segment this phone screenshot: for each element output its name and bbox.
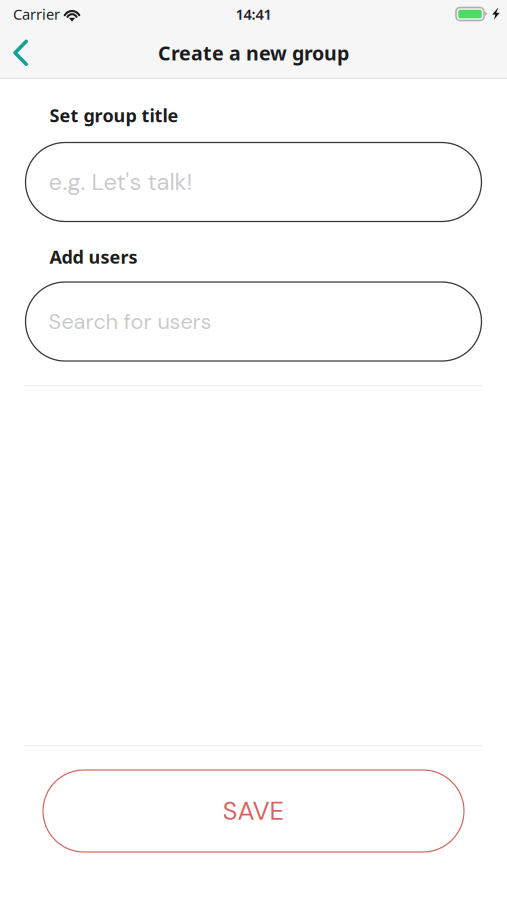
staticText: Create a new group xyxy=(158,40,349,66)
staticText: Set group title xyxy=(49,103,178,127)
staticText: Search for users xyxy=(48,307,211,336)
staticText: Carrier xyxy=(13,4,60,24)
staticText: e.g. Let's talk! xyxy=(48,167,192,197)
button[interactable]: Back xyxy=(0,28,48,77)
button[interactable]: Search for users xyxy=(25,282,481,361)
staticText: SAVE xyxy=(222,794,284,828)
staticText: 14:41 xyxy=(235,4,271,24)
button[interactable]: e.g. Let's talk! xyxy=(25,142,481,221)
button[interactable]: SAVE xyxy=(43,770,464,852)
staticText: Add users xyxy=(49,244,137,269)
